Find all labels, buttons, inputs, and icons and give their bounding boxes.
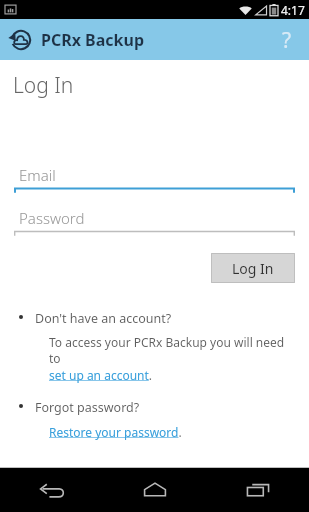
staticText: 4:17	[281, 2, 305, 18]
button[interactable]: Password	[14, 206, 295, 236]
staticText: Password	[19, 208, 85, 228]
staticText: To access your PCRx Backup you will need…	[49, 334, 295, 367]
staticText: set up an account.	[49, 367, 153, 383]
staticText: Don't have an account?	[35, 310, 172, 327]
button[interactable]: Home	[103, 468, 206, 512]
staticText: PCRx Backup	[41, 29, 145, 51]
button[interactable]: Restore your password.	[49, 424, 182, 440]
button[interactable]: Email	[14, 163, 295, 193]
staticText: Email	[19, 165, 56, 185]
staticText: Log In	[13, 71, 74, 100]
staticText: Forgot password?	[35, 399, 140, 416]
button[interactable]: Log In	[211, 253, 295, 283]
button[interactable]: Recent apps	[206, 468, 309, 512]
staticText: Log In	[232, 259, 274, 278]
button[interactable]: set up an account.	[49, 367, 153, 383]
staticText: Restore your password.	[49, 424, 182, 440]
staticText: ?	[282, 26, 292, 55]
button[interactable]: Back	[0, 468, 103, 512]
button[interactable]: Help	[269, 22, 305, 58]
